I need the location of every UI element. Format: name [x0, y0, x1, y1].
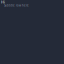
staticText: Subtitle row here [4, 4, 29, 7]
staticText: Hi [1, 0, 5, 5]
